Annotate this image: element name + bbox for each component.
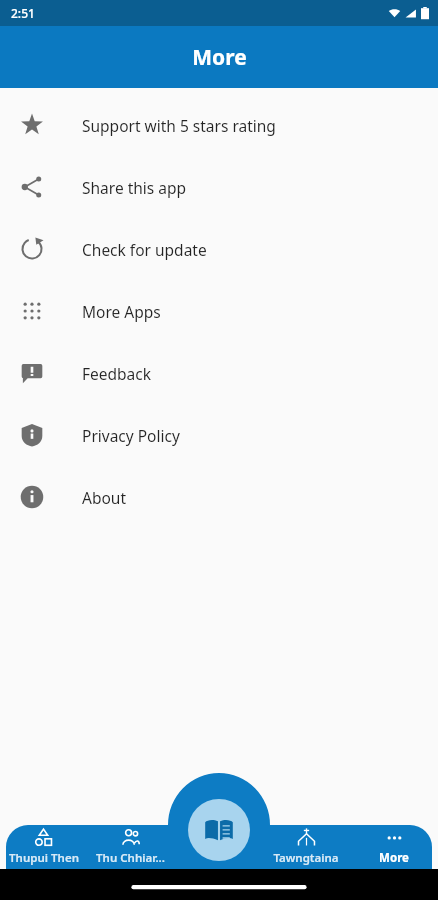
button[interactable]: More — [350, 825, 438, 869]
button[interactable]: Tawngtaina — [262, 825, 350, 869]
staticText: More — [192, 43, 247, 72]
staticText: Thupui Then — [9, 850, 79, 866]
button[interactable]: More Apps — [0, 280, 438, 342]
staticText: Privacy Policy — [82, 425, 180, 446]
staticText: 2:51 — [11, 5, 35, 21]
staticText: More Apps — [82, 301, 161, 322]
button[interactable]: Support with 5 stars rating — [0, 94, 438, 156]
staticText: Support with 5 stars rating — [82, 115, 276, 136]
button[interactable]: Share this app — [0, 156, 438, 218]
button[interactable]: Thupui Then — [0, 825, 87, 869]
button[interactable]: Thu Chhiar... — [87, 825, 174, 869]
staticText: Share this app — [82, 177, 187, 198]
button[interactable]: Privacy Policy — [0, 404, 438, 466]
button[interactable]: Check for update — [0, 218, 438, 280]
staticText: Check for update — [82, 239, 207, 260]
staticText: About — [82, 487, 126, 508]
staticText: Thu Chhiar... — [96, 850, 165, 866]
button[interactable]: Read — [188, 799, 250, 861]
staticText: Feedback — [82, 363, 152, 384]
staticText: Tawngtaina — [273, 850, 339, 866]
staticText: More — [379, 850, 409, 866]
button[interactable]: Feedback — [0, 342, 438, 404]
button[interactable]: About — [0, 466, 438, 528]
